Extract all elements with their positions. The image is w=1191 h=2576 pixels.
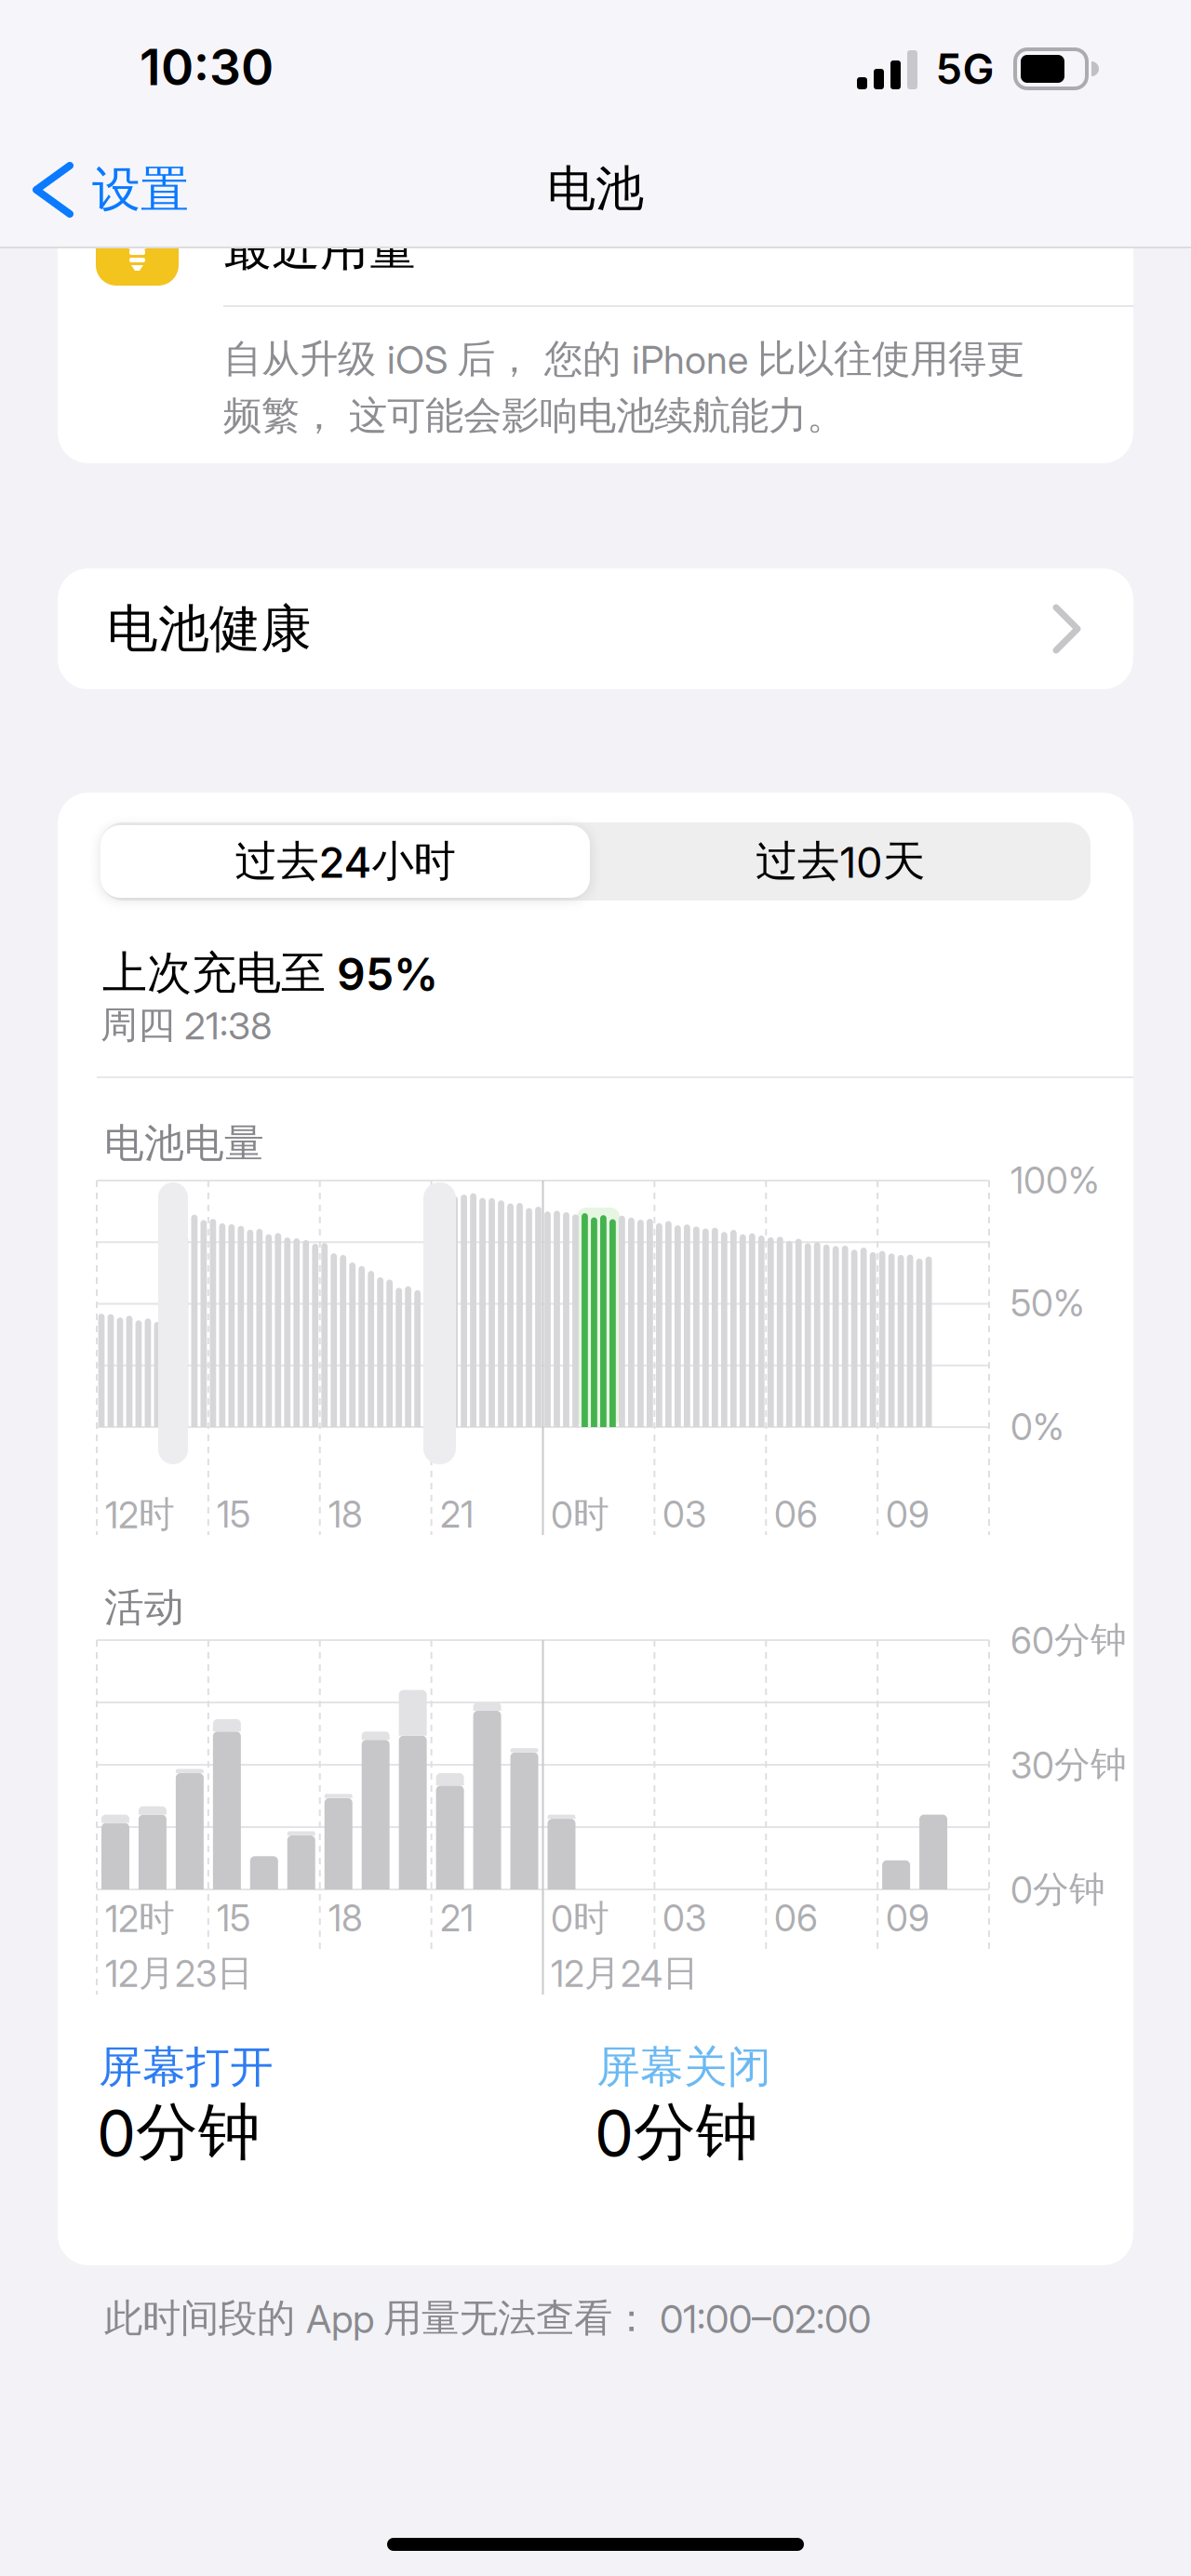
staticText: 09 [886, 1493, 930, 1536]
staticText: 过去10天 [756, 836, 925, 887]
staticText: 电池健康 [107, 598, 312, 660]
staticText: 60分钟 [1010, 1618, 1127, 1662]
staticText: 12月24日 [551, 1951, 699, 1995]
button[interactable]: 电池健康 [58, 568, 1133, 689]
staticText: 18 [328, 1897, 363, 1939]
staticText: 5G [936, 44, 994, 94]
staticText: 活动 [104, 1583, 184, 1632]
staticText: 电池 [547, 159, 644, 219]
staticText: 上次充电至 95% [102, 946, 438, 1001]
staticText: 此时间段的 App 用量无法查看： 01:00–02:00 [104, 2295, 871, 2342]
button[interactable]: 过去10天 [595, 825, 1085, 898]
staticText: 过去24小时 [235, 836, 455, 887]
staticText: 0分钟 [595, 2094, 758, 2170]
staticText: 50% [1010, 1282, 1085, 1325]
staticText: 自从升级 iOS 后， 您的 iPhone 比以往使用得更 [223, 335, 1024, 383]
staticText: 设置 [92, 160, 189, 220]
staticText: 0分钟 [97, 2094, 261, 2170]
staticText: 15 [217, 1897, 250, 1939]
staticText: 12时 [105, 1896, 175, 1940]
staticText: 18 [328, 1493, 363, 1536]
staticText: 03 [662, 1897, 706, 1939]
staticText: 0时 [551, 1492, 609, 1537]
button[interactable]: 过去24小时 [100, 825, 590, 898]
staticText: 12月23日 [105, 1951, 253, 1995]
staticText: 100% [1010, 1159, 1100, 1202]
staticText: 12时 [105, 1492, 175, 1537]
staticText: 09 [886, 1897, 930, 1939]
staticText: 0时 [551, 1896, 609, 1940]
staticText: 频繁， 这可能会影响电池续航能力。 [223, 392, 845, 439]
staticText: 电池电量 [104, 1119, 264, 1168]
staticText: 21 [440, 1897, 474, 1939]
staticText: 06 [774, 1493, 818, 1536]
staticText: 21 [440, 1493, 474, 1536]
staticText: 0分钟 [1010, 1867, 1105, 1912]
staticText: 03 [662, 1493, 706, 1536]
staticText: 15 [217, 1493, 250, 1536]
staticText: 屏幕打开 [99, 2040, 274, 2094]
staticText: 最近用量 [223, 219, 417, 278]
staticText: 10:30 [140, 38, 274, 96]
staticText: 屏幕关闭 [596, 2040, 771, 2094]
staticText: 0% [1010, 1406, 1064, 1448]
staticText: 06 [774, 1897, 818, 1939]
staticText: 30分钟 [1010, 1743, 1127, 1787]
staticText: 周四 21:38 [100, 1002, 272, 1048]
button[interactable]: 设置 [28, 158, 195, 221]
